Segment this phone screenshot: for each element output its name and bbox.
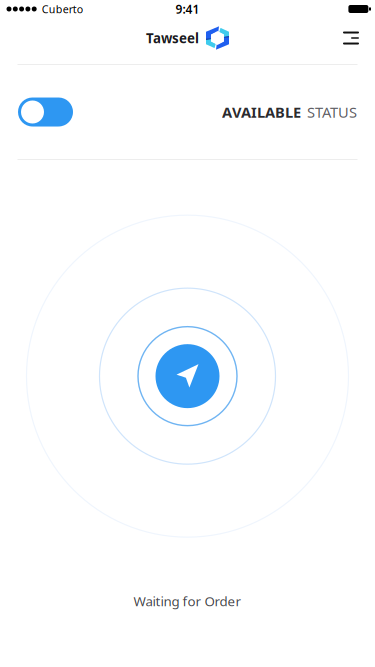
staticText: 9:41 bbox=[175, 1, 199, 17]
button[interactable]: Menu bbox=[327, 18, 375, 58]
button[interactable]: Availability toggle bbox=[18, 97, 73, 126]
staticText: Tawseel bbox=[146, 29, 199, 47]
staticText: STATUS bbox=[307, 102, 357, 122]
staticText: AVAILABLE bbox=[222, 102, 301, 122]
staticText: Cuberto bbox=[42, 2, 83, 16]
staticText: Waiting for Order bbox=[133, 592, 241, 610]
